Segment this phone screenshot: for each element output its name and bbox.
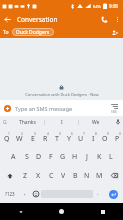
staticText: 7 bbox=[83, 132, 85, 136]
button[interactable]: 2 bbox=[13, 128, 26, 147]
staticText: . bbox=[97, 189, 99, 197]
staticText: T bbox=[55, 134, 59, 144]
button[interactable]: 8 bbox=[87, 128, 99, 147]
staticText: SMS bbox=[111, 110, 118, 114]
button[interactable]: More options bbox=[111, 13, 123, 25]
staticText: 2 bbox=[21, 132, 23, 136]
staticText: X bbox=[36, 171, 41, 181]
staticText: A bbox=[11, 152, 16, 162]
button[interactable]: A bbox=[7, 147, 20, 166]
staticText: M bbox=[96, 171, 103, 181]
button[interactable]: 7 bbox=[75, 128, 87, 147]
staticText: D bbox=[36, 152, 42, 162]
staticText: G bbox=[60, 152, 66, 162]
button[interactable]: G bbox=[57, 147, 69, 166]
staticText: V bbox=[61, 171, 66, 181]
button[interactable]: Thanks bbox=[10, 116, 44, 128]
staticText: 3 bbox=[34, 132, 36, 136]
staticText: I bbox=[92, 134, 95, 144]
button[interactable]: Emoji bbox=[30, 185, 41, 203]
button[interactable]: K bbox=[93, 147, 105, 166]
button[interactable]: Voice input bbox=[112, 116, 123, 128]
staticText: O bbox=[102, 134, 108, 144]
button[interactable]: Back bbox=[0, 203, 41, 220]
staticText: To bbox=[3, 29, 9, 36]
button[interactable]: F bbox=[45, 147, 57, 166]
button[interactable]: L bbox=[105, 147, 117, 166]
staticText: G bbox=[3, 119, 7, 126]
button[interactable]: Add attachment bbox=[3, 104, 12, 113]
button[interactable]: Call bbox=[97, 12, 111, 26]
button[interactable]: Backspace bbox=[105, 166, 123, 185]
staticText: Type an SMS message bbox=[15, 105, 73, 112]
staticText: E bbox=[31, 134, 35, 144]
button[interactable]: C bbox=[45, 166, 57, 185]
button[interactable]: 1 bbox=[0, 128, 13, 147]
button[interactable]: N bbox=[81, 166, 93, 185]
button[interactable]: ?123 bbox=[0, 185, 19, 203]
button[interactable]: Recent apps bbox=[82, 203, 123, 220]
staticText: , bbox=[24, 189, 26, 197]
button[interactable]: Period bbox=[93, 185, 103, 203]
button[interactable]: D bbox=[33, 147, 45, 166]
button[interactable]: Add recipient bbox=[109, 27, 120, 38]
staticText: Y bbox=[67, 134, 71, 144]
button[interactable]: Google bbox=[0, 116, 10, 128]
button[interactable]: We bbox=[79, 116, 112, 128]
button[interactable]: V bbox=[57, 166, 69, 185]
staticText: P bbox=[115, 134, 120, 144]
button[interactable]: Duck Dodgers bbox=[12, 28, 54, 36]
staticText: C bbox=[49, 171, 54, 181]
button[interactable]: Shift bbox=[0, 166, 19, 185]
button[interactable]: M bbox=[93, 166, 105, 185]
button[interactable]: I bbox=[45, 116, 78, 128]
button[interactable]: J bbox=[81, 147, 93, 166]
button[interactable]: Z bbox=[19, 166, 32, 185]
staticText: 0 bbox=[119, 132, 121, 136]
staticText: 1 bbox=[8, 132, 10, 136]
staticText: J bbox=[86, 152, 88, 162]
staticText: W bbox=[16, 134, 23, 144]
staticText: B bbox=[73, 171, 78, 181]
staticText: K bbox=[97, 152, 102, 162]
button[interactable]: 0 bbox=[111, 128, 123, 147]
button[interactable]: X bbox=[32, 166, 45, 185]
staticText: ?123 bbox=[5, 191, 15, 197]
staticText: Duck Dodgers bbox=[16, 29, 50, 36]
staticText: Thanks bbox=[19, 119, 36, 126]
staticText: N bbox=[84, 171, 90, 181]
button[interactable]: Type an SMS message bbox=[15, 105, 107, 112]
button[interactable]: 9 bbox=[99, 128, 111, 147]
staticText: U bbox=[78, 134, 84, 144]
staticText: H bbox=[72, 152, 78, 162]
staticText: F bbox=[49, 152, 53, 162]
staticText: 5 bbox=[59, 132, 61, 136]
staticText: Z bbox=[23, 171, 28, 181]
button[interactable]: H bbox=[69, 147, 81, 166]
button[interactable]: Back bbox=[0, 12, 14, 26]
button[interactable]: 3 bbox=[26, 128, 39, 147]
button[interactable]: 6 bbox=[63, 128, 75, 147]
staticText: Conversation with Duck Dodgers · Now bbox=[25, 92, 99, 97]
button[interactable]: B bbox=[69, 166, 81, 185]
button[interactable]: S bbox=[20, 147, 33, 166]
staticText: S bbox=[25, 152, 29, 162]
staticText: Conversation bbox=[17, 15, 97, 24]
staticText: 8 bbox=[95, 132, 97, 136]
button[interactable]: Send bbox=[109, 103, 120, 114]
staticText: 4 bbox=[47, 132, 49, 136]
staticText: 9 bbox=[107, 132, 109, 136]
button[interactable]: Home bbox=[41, 203, 82, 220]
button[interactable]: Comma bbox=[19, 185, 30, 203]
button[interactable]: Enter bbox=[103, 185, 123, 203]
button[interactable]: 5 bbox=[51, 128, 63, 147]
staticText: 6 bbox=[71, 132, 73, 136]
staticText: L bbox=[109, 152, 113, 162]
staticText: We bbox=[92, 119, 100, 126]
staticText: I bbox=[61, 119, 63, 126]
staticText: 9:08 bbox=[109, 3, 118, 9]
staticText: 84% bbox=[93, 4, 101, 9]
staticText: R bbox=[43, 134, 48, 144]
button[interactable]: 4 bbox=[39, 128, 51, 147]
